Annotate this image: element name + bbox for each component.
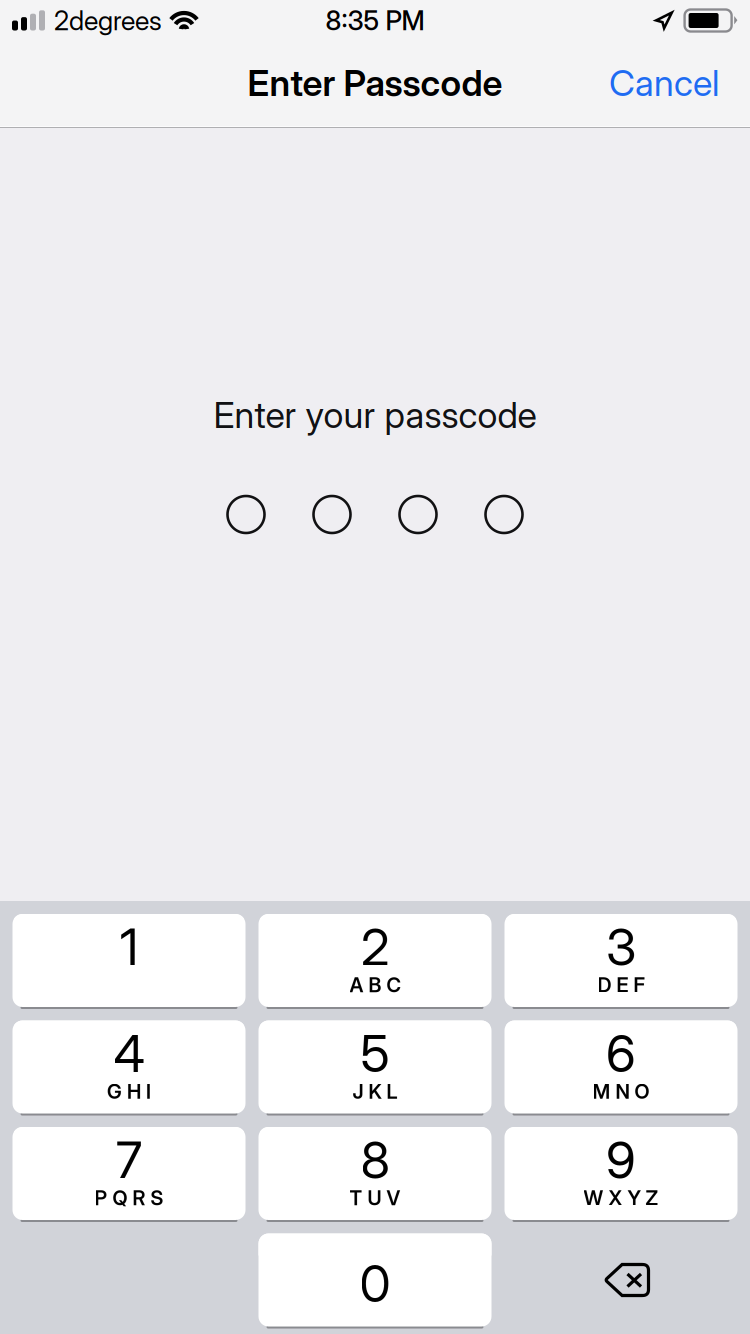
staticText: J K L [352, 1079, 397, 1104]
staticText: 2 [361, 916, 389, 978]
staticText: 2degrees [54, 4, 162, 37]
staticText: 7 [116, 1129, 142, 1191]
staticText: A B C [349, 973, 400, 997]
button[interactable]: 4 [12, 1020, 245, 1113]
staticText: P Q R S [94, 1186, 163, 1210]
button[interactable]: 5 [258, 1020, 491, 1113]
staticText: 8 [360, 1129, 389, 1191]
staticText: M N O [592, 1079, 649, 1104]
staticText: T U V [349, 1186, 400, 1210]
staticText: G H I [107, 1079, 151, 1104]
staticText: 8:35 PM [325, 4, 424, 37]
button[interactable]: 9 [504, 1127, 737, 1220]
staticText: Enter Passcode [247, 61, 502, 105]
staticText: 9 [606, 1129, 636, 1191]
staticText: Enter your passcode [213, 393, 536, 437]
button[interactable]: 0 [258, 1233, 491, 1326]
button[interactable]: 6 [504, 1020, 737, 1113]
button[interactable]: 7 [12, 1127, 245, 1220]
button[interactable]: 2 [258, 914, 491, 1007]
staticText: 1 [120, 916, 138, 978]
staticText: 0 [359, 1253, 390, 1314]
staticText: Cancel [609, 61, 719, 105]
button[interactable]: Cancel [559, 39, 750, 127]
staticText: 5 [360, 1023, 389, 1084]
staticText: 6 [606, 1023, 636, 1084]
button[interactable]: 8 [258, 1127, 491, 1220]
button[interactable]: 1 [12, 914, 245, 1007]
staticText: 3 [606, 916, 636, 978]
button[interactable]: Delete [504, 1233, 737, 1326]
button[interactable]: 3 [504, 914, 737, 1007]
staticText: W X Y Z [583, 1186, 658, 1210]
staticText: 4 [113, 1023, 144, 1084]
staticText: D E F [597, 973, 644, 997]
